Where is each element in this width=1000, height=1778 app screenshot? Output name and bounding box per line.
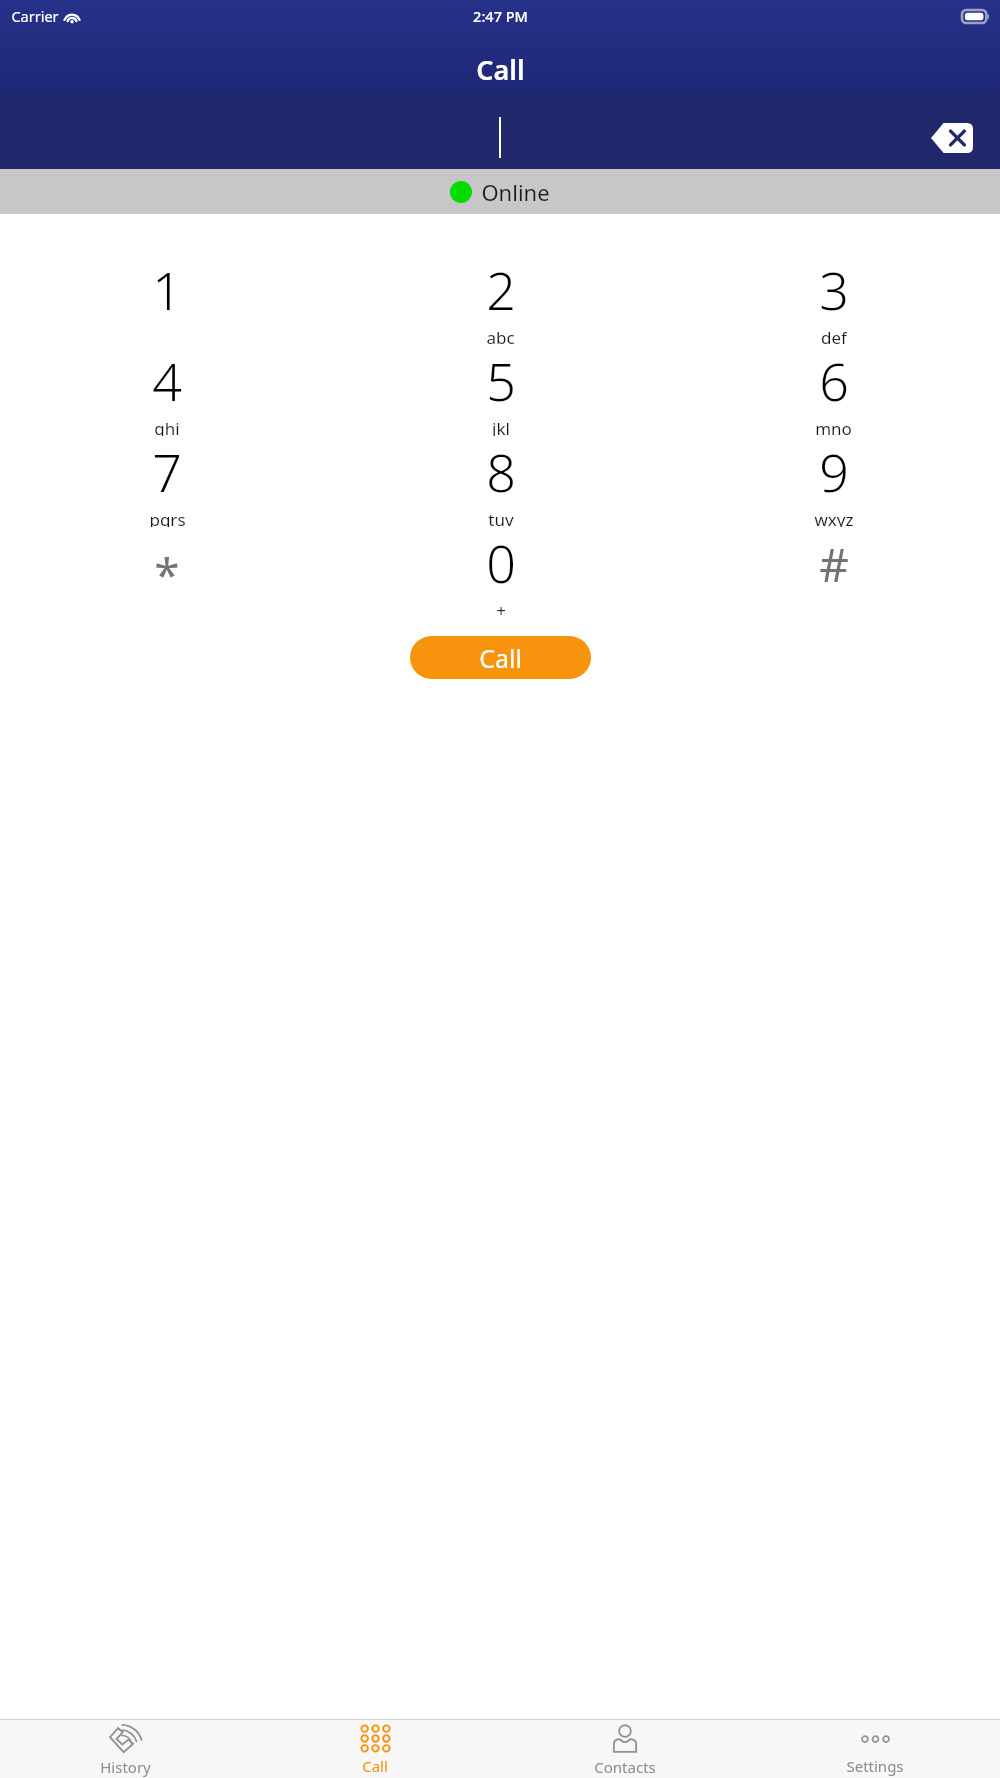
button[interactable]: Call (250, 1720, 500, 1778)
staticText: tuv (488, 508, 514, 527)
button[interactable]: 3 (667, 254, 1000, 345)
button[interactable]: Settings (750, 1720, 1000, 1778)
staticText: Contacts (594, 1757, 656, 1777)
button[interactable]: # (667, 527, 1000, 618)
staticText: pqrs (149, 508, 186, 527)
staticText: Call (476, 51, 525, 88)
button[interactable]: Backspace (926, 112, 978, 164)
staticText: 8 (486, 436, 516, 507)
button[interactable]: History (0, 1720, 250, 1778)
staticText: Call (362, 1756, 388, 1776)
button[interactable]: 0 (334, 527, 667, 618)
button[interactable]: 8 (334, 436, 667, 527)
button[interactable]: 9 (667, 436, 1000, 527)
staticText: abc (486, 326, 515, 345)
staticText: Carrier (11, 6, 59, 26)
staticText: Online (481, 177, 550, 207)
staticText: 9 (819, 436, 849, 507)
button[interactable]: Contacts (500, 1720, 750, 1778)
staticText: 4 (152, 345, 182, 416)
button[interactable]: 7 (0, 436, 334, 527)
staticText: jkl (492, 417, 510, 436)
button[interactable]: * (0, 527, 334, 618)
button[interactable]: 4 (0, 345, 334, 436)
staticText: Call (479, 641, 522, 675)
staticText: 2:47 PM (473, 6, 528, 26)
button[interactable]: 5 (334, 345, 667, 436)
staticText: 5 (486, 345, 516, 416)
staticText: * (154, 543, 180, 606)
button[interactable]: 6 (667, 345, 1000, 436)
staticText: ghi (154, 417, 180, 436)
staticText: def (821, 326, 847, 345)
staticText: 0 (486, 527, 516, 598)
staticText: 6 (819, 345, 849, 416)
staticText: mno (815, 417, 852, 436)
button[interactable]: 2 (334, 254, 667, 345)
staticText: wxyz (814, 508, 854, 527)
button[interactable]: 1 (0, 254, 334, 345)
button[interactable]: Call (410, 636, 591, 679)
staticText: 7 (152, 436, 182, 507)
staticText: Settings (846, 1756, 904, 1776)
staticText: # (819, 533, 849, 596)
staticText: History (100, 1757, 151, 1777)
staticText: 1 (152, 254, 182, 325)
staticText: + (496, 599, 506, 618)
staticText: 3 (819, 254, 849, 325)
staticText: 2 (486, 254, 516, 325)
